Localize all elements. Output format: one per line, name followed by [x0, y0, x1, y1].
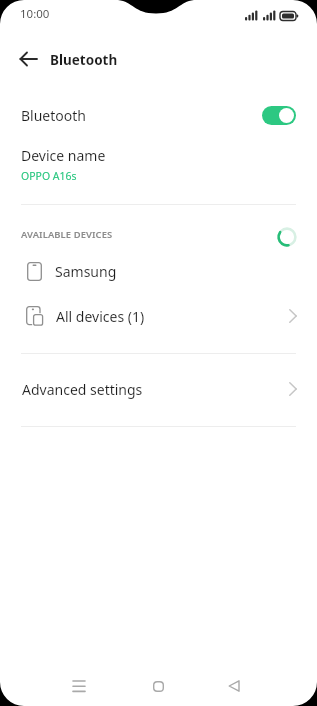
button[interactable]: Device name: [0, 143, 317, 193]
staticText: AVAILABLE DEVICES: [21, 228, 113, 241]
staticText: All devices (1): [56, 307, 145, 326]
button[interactable]: Bluetooth: [0, 92, 317, 138]
staticText: Bluetooth: [50, 51, 118, 69]
staticText: OPPO A16s: [21, 169, 77, 183]
staticText: Advanced settings: [22, 380, 143, 399]
staticText: Bluetooth: [21, 106, 86, 125]
button[interactable]: [218, 670, 250, 702]
button[interactable]: All devices (1): [0, 294, 317, 338]
button[interactable]: [63, 670, 95, 702]
staticText: 10:00: [20, 6, 50, 22]
button[interactable]: [8, 44, 48, 74]
staticText: Samsung: [55, 262, 117, 281]
button[interactable]: Samsung: [0, 249, 317, 293]
button[interactable]: [142, 670, 174, 702]
staticText: Device name: [21, 146, 106, 165]
button[interactable]: Advanced settings: [0, 367, 317, 411]
